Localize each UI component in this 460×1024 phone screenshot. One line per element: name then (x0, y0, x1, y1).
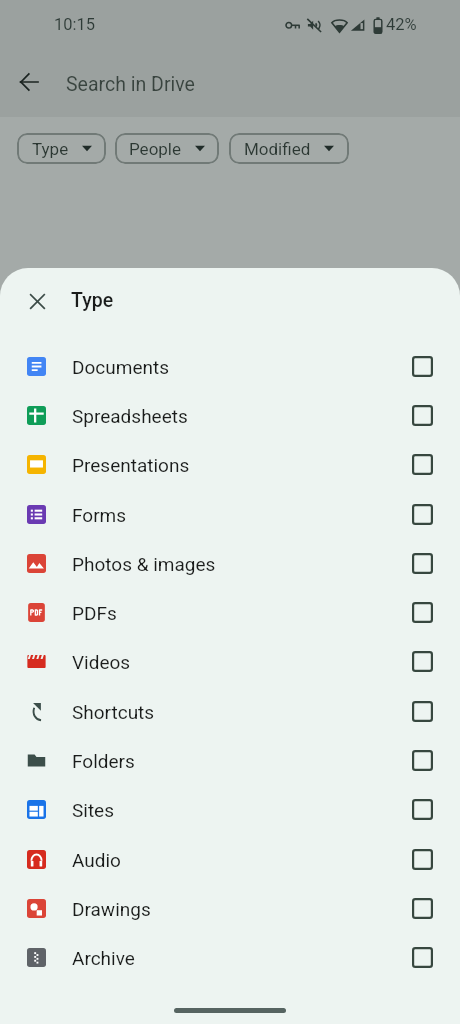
button[interactable]: Drawings (0, 884, 460, 933)
staticText: People (129, 139, 182, 159)
button[interactable]: Presentations (0, 440, 460, 489)
staticText: Type (71, 289, 114, 312)
button[interactable]: Archive (0, 933, 460, 982)
staticText: PDFs (72, 602, 117, 624)
staticText: Documents (72, 356, 169, 378)
button[interactable]: PDFs (0, 588, 460, 637)
button[interactable]: Sites (0, 785, 460, 834)
button[interactable]: Videos (0, 637, 460, 686)
button[interactable]: Spreadsheets (0, 391, 460, 440)
button[interactable]: Modified (229, 133, 349, 164)
staticText: Sites (72, 799, 114, 821)
staticText: Presentations (72, 454, 190, 476)
button[interactable]: Photos & images (0, 539, 460, 588)
button[interactable]: People (115, 133, 219, 164)
staticText: Spreadsheets (72, 405, 188, 427)
staticText: Photos & images (72, 553, 216, 575)
staticText: 10:15 (54, 15, 96, 34)
staticText: Forms (72, 504, 127, 526)
staticText: Shortcuts (72, 701, 155, 723)
button[interactable]: Documents (0, 342, 460, 391)
button[interactable]: Audio (0, 835, 460, 884)
staticText: Drawings (72, 898, 151, 920)
button[interactable]: Shortcuts (0, 687, 460, 736)
staticText: Folders (72, 750, 135, 772)
button[interactable]: Type (17, 133, 106, 164)
button[interactable]: Back (6, 59, 51, 104)
staticText: Audio (72, 849, 121, 871)
button[interactable]: Close (22, 286, 52, 316)
staticText: Search in Drive (66, 73, 195, 96)
staticText: Archive (72, 947, 135, 969)
staticText: Modified (244, 139, 311, 159)
staticText: Type (32, 139, 69, 159)
button[interactable]: Forms (0, 490, 460, 539)
staticText: 42% (386, 15, 417, 34)
button[interactable]: Folders (0, 736, 460, 785)
staticText: Videos (72, 651, 131, 673)
